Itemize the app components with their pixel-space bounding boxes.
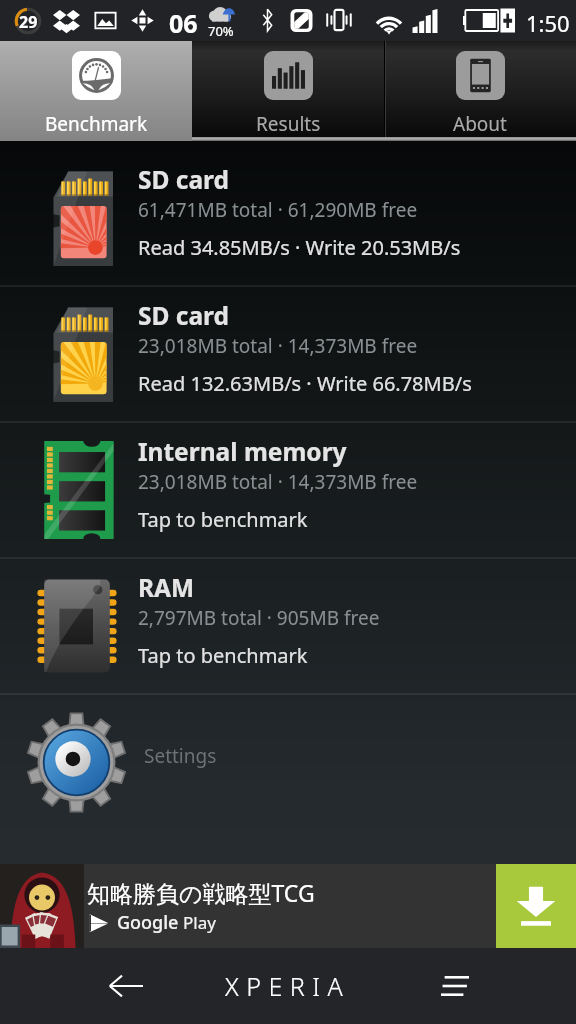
staticText: 61,471MB total · 61,290MB free: [138, 197, 418, 223]
staticText: RAM: [138, 571, 195, 604]
staticText: SD card: [138, 299, 230, 332]
staticText: 23,018MB total · 14,373MB free: [138, 333, 418, 359]
staticText: XPERIA: [225, 969, 351, 1003]
button[interactable]: Menu: [415, 948, 495, 1024]
staticText: 29: [19, 11, 38, 33]
button[interactable]: SD card: [0, 151, 576, 285]
staticText: Settings: [144, 743, 217, 769]
button[interactable]: RAM: [0, 559, 576, 693]
staticText: Results: [256, 111, 321, 137]
staticText: 知略勝負の戦略型TCG: [87, 877, 315, 908]
staticText: 23,018MB total · 14,373MB free: [138, 469, 418, 495]
button[interactable]: Benchmark: [0, 41, 192, 141]
staticText: Read 34.85MB/s · Write 20.53MB/s: [138, 234, 461, 261]
staticText: Tap to benchmark: [138, 506, 308, 533]
staticText: Tap to benchmark: [138, 642, 308, 669]
staticText: Benchmark: [45, 111, 148, 137]
staticText: 70%: [208, 22, 234, 40]
button[interactable]: Back: [85, 948, 165, 1024]
staticText: Internal memory: [138, 435, 347, 468]
button[interactable]: Results: [192, 41, 384, 141]
staticText: Play: [183, 911, 216, 934]
button[interactable]: SD card: [0, 287, 576, 421]
staticText: 06: [169, 6, 198, 40]
staticText: SD card: [138, 163, 230, 196]
staticText: Google: [117, 910, 179, 935]
button[interactable]: Install app: [496, 864, 576, 948]
staticText: 2,797MB total · 905MB free: [138, 605, 380, 631]
staticText: About: [453, 111, 507, 137]
button[interactable]: Settings: [0, 695, 576, 829]
staticText: Read 132.63MB/s · Write 66.78MB/s: [138, 370, 472, 397]
button[interactable]: Internal memory: [0, 423, 576, 557]
button[interactable]: About: [384, 41, 576, 141]
button[interactable]: XPERIA: [205, 948, 370, 1024]
staticText: 1:50: [526, 8, 570, 38]
